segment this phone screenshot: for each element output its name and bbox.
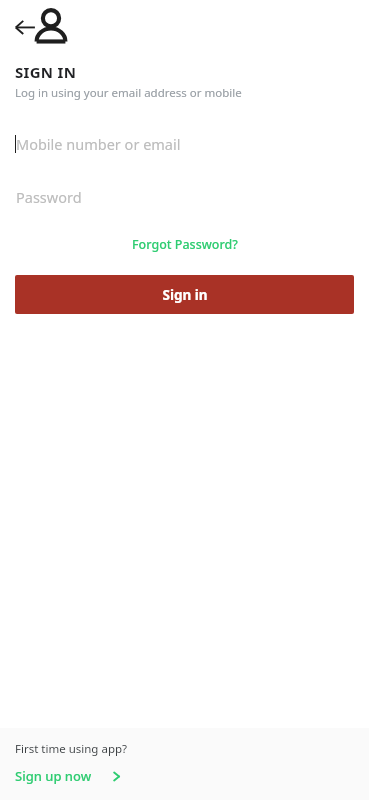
staticText: SIGN IN (15, 62, 77, 82)
button[interactable]: Mobile number or email (0, 129, 369, 159)
button[interactable]: Forgot Password? (124, 233, 246, 256)
button[interactable]: Back (11, 13, 39, 41)
button[interactable]: Password (0, 182, 369, 212)
other: Account (31, 6, 71, 46)
staticText: Forgot Password? (132, 236, 238, 253)
staticText: Mobile number or email (16, 134, 181, 154)
staticText: First time using app? (15, 741, 128, 757)
staticText: Sign up now (15, 767, 92, 785)
staticText: Sign in (162, 286, 208, 304)
staticText: Log in using your email address or mobil… (15, 85, 242, 101)
button[interactable]: Sign up now (0, 765, 135, 787)
button[interactable]: Sign in (15, 275, 354, 314)
staticText: Password (16, 187, 82, 207)
